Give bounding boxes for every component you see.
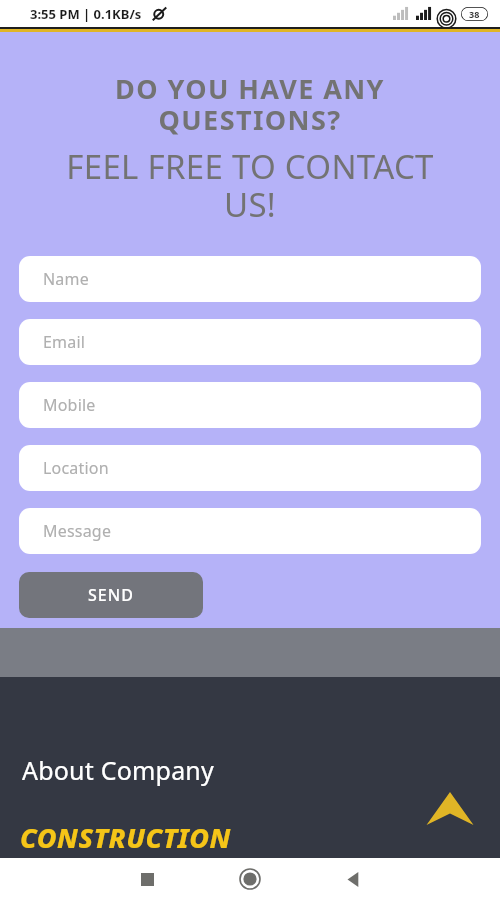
button[interactable]: Recents [132,864,162,894]
staticText: FEEL FREE TO CONTACT US! [10,144,490,226]
button[interactable]: Scroll to top [425,785,475,835]
staticText: DO YOU HAVE ANY QUESTIONS? [16,70,484,138]
staticText: About Company [22,753,214,787]
button[interactable]: Home [233,862,267,896]
button[interactable]: Name [19,256,481,302]
staticText: Email [43,331,86,353]
button[interactable]: Location [19,445,481,491]
button[interactable]: SEND [19,572,203,618]
staticText: CONSTRUCTION [20,819,231,856]
staticText: SEND [88,584,134,606]
button[interactable]: Mobile [19,382,481,428]
staticText: Mobile [43,394,96,416]
button[interactable]: Back [338,864,368,894]
button[interactable]: Email [19,319,481,365]
staticText: 38 [469,8,480,20]
staticText: 3:55 PM | 0.1KB/s [30,5,142,23]
staticText: Message [43,520,112,542]
staticText: Location [43,457,109,479]
button[interactable]: Message [19,508,481,554]
staticText: Name [43,268,89,290]
